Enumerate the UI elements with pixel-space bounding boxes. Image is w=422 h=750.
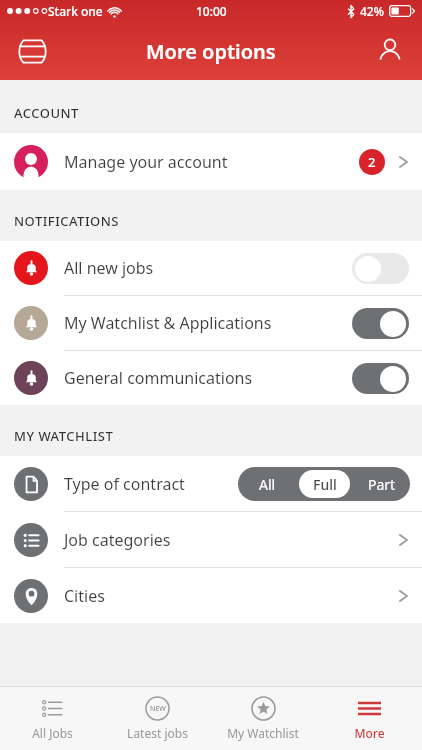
staticText: Job categories <box>64 529 398 551</box>
button[interactable]: My Watchlist <box>210 687 316 750</box>
button[interactable]: All new jobs off <box>352 253 409 284</box>
button[interactable]: Cities <box>0 568 422 623</box>
staticText: More <box>354 725 385 741</box>
staticText: NEW <box>150 704 166 714</box>
staticText: 10:00 <box>196 3 227 19</box>
button[interactable]: Part <box>356 470 407 498</box>
staticText: NOTIFICATIONS <box>14 212 119 230</box>
staticText: Manage your account <box>64 151 359 173</box>
button[interactable]: All new jobs <box>0 241 422 295</box>
staticText: MY WATCHLIST <box>14 427 114 445</box>
button[interactable]: My Watchlist & Applications <box>0 296 422 350</box>
button[interactable]: My Watchlist & Applications on <box>352 308 409 339</box>
staticText: Full <box>313 475 337 494</box>
staticText: ACCOUNT <box>14 104 79 122</box>
button[interactable]: Type of contract <box>0 456 422 511</box>
button[interactable]: Profile <box>366 27 414 75</box>
staticText: Cities <box>64 585 398 607</box>
button[interactable]: General communications on <box>352 363 409 394</box>
button[interactable]: Full <box>299 470 350 498</box>
button[interactable]: All Jobs <box>0 687 105 750</box>
staticText: All new jobs <box>64 257 352 279</box>
staticText: General communications <box>64 367 352 389</box>
button[interactable]: Menu <box>8 27 56 75</box>
staticText: 2 <box>368 153 376 171</box>
staticText: More options <box>146 38 276 65</box>
staticText: All <box>259 475 276 494</box>
button[interactable]: All <box>241 470 293 498</box>
button[interactable]: NEW <box>105 687 210 750</box>
staticText: 42% <box>360 3 384 19</box>
button[interactable]: Job categories <box>0 512 422 567</box>
staticText: Latest jobs <box>127 725 188 741</box>
button[interactable]: Manage your account <box>0 133 422 190</box>
button[interactable]: General communications <box>0 351 422 405</box>
button[interactable]: More <box>316 687 422 750</box>
staticText: Part <box>368 475 396 494</box>
staticText: All Jobs <box>32 725 73 741</box>
staticText: My Watchlist & Applications <box>64 312 352 334</box>
staticText: My Watchlist <box>227 725 299 741</box>
staticText: Stark one <box>48 3 103 19</box>
staticText: Type of contract <box>64 473 238 495</box>
